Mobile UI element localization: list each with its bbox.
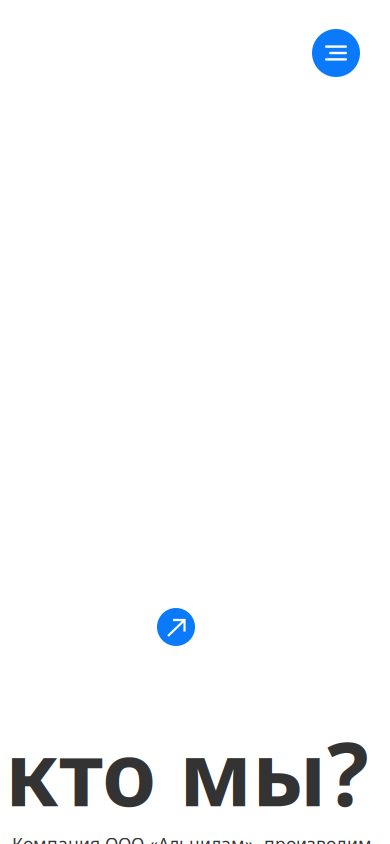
staticText: Компания ООО «Альцилам», производим: [12, 832, 372, 844]
staticText: кто мы?: [5, 713, 369, 832]
button[interactable]: Menu: [312, 29, 360, 77]
button[interactable]: Open link: [157, 608, 195, 646]
